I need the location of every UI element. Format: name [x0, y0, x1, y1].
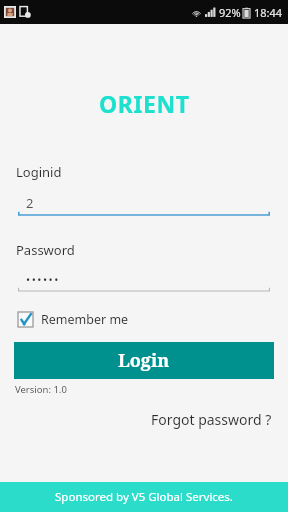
staticText: ••••••	[26, 272, 60, 287]
staticText: Forgot password ?	[151, 410, 272, 429]
staticText: ORIENT	[99, 88, 190, 119]
button[interactable]: Login	[14, 342, 274, 379]
button[interactable]: 2	[18, 193, 270, 219]
staticText: Sponsored by V5 Global Services.	[55, 489, 233, 505]
staticText: 2	[26, 194, 34, 212]
staticText: Login	[118, 348, 170, 373]
staticText: Loginid	[16, 163, 62, 181]
button[interactable]: Remember me	[18, 311, 129, 328]
button[interactable]: ••••••	[18, 269, 270, 295]
staticText: 92%	[219, 5, 241, 20]
button[interactable]: Forgot password ?	[151, 410, 272, 429]
staticText: Password	[16, 241, 75, 259]
staticText: 18:44	[254, 5, 283, 20]
staticText: Remember me	[41, 311, 129, 328]
staticText: Version: 1.0	[15, 383, 67, 396]
